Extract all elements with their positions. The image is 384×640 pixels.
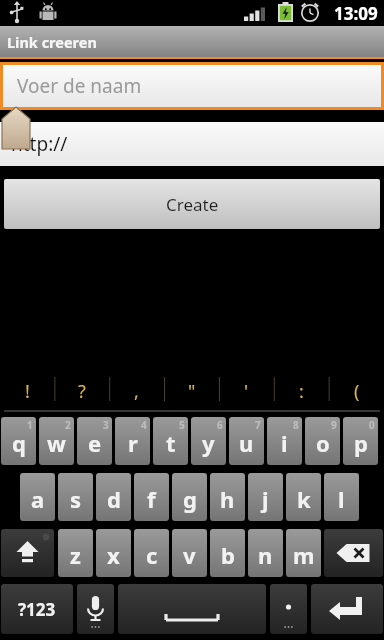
staticText: c <box>146 540 158 570</box>
button[interactable]: ? <box>54 369 109 413</box>
staticText: v <box>183 540 196 570</box>
button[interactable]: Voice input <box>77 584 114 634</box>
button[interactable]: ! <box>0 369 54 413</box>
button[interactable]: ( <box>329 369 384 413</box>
button[interactable]: Voer de naam <box>3 65 381 107</box>
button[interactable]: g <box>172 473 207 521</box>
staticText: 8 <box>293 418 299 432</box>
button[interactable]: y <box>191 417 226 465</box>
button[interactable]: " <box>164 369 219 413</box>
staticText: http:// <box>11 131 68 157</box>
button[interactable]: ?123 <box>1 584 73 634</box>
staticText: j <box>262 484 269 514</box>
staticText: 2 <box>65 418 71 432</box>
staticText: ! <box>25 379 30 404</box>
staticText: 4 <box>141 418 147 432</box>
button[interactable]: r <box>115 417 150 465</box>
staticText: w <box>47 428 66 458</box>
staticText: l <box>338 484 345 514</box>
button[interactable]: k <box>286 473 321 521</box>
button[interactable]: : <box>274 369 329 413</box>
button[interactable]: Shift <box>1 529 54 577</box>
button[interactable]: m <box>286 529 321 577</box>
staticText: , <box>134 379 139 404</box>
staticText: Create <box>166 193 219 216</box>
staticText: q <box>12 428 26 458</box>
staticText: : <box>299 379 304 404</box>
button[interactable]: z <box>58 529 93 577</box>
staticText: 7 <box>255 418 261 432</box>
button[interactable]: Create <box>4 179 380 229</box>
staticText: x <box>107 540 120 570</box>
button[interactable]: v <box>172 529 207 577</box>
staticText: Voer de naam <box>17 73 142 99</box>
button[interactable]: http:// <box>0 122 384 166</box>
staticText: r <box>128 428 138 458</box>
staticText: 5 <box>179 418 185 432</box>
staticText: ?123 <box>18 598 56 621</box>
staticText: " <box>188 379 196 404</box>
staticText: 3 <box>103 418 109 432</box>
staticText: g <box>183 484 197 514</box>
staticText: z <box>70 540 81 570</box>
staticText: 9 <box>331 418 337 432</box>
staticText: ? <box>78 379 86 404</box>
staticText: ' <box>244 379 249 404</box>
staticText: ( <box>354 379 360 404</box>
button[interactable]: f <box>134 473 169 521</box>
staticText: 0 <box>369 418 375 432</box>
staticText: m <box>293 540 315 570</box>
button[interactable]: c <box>134 529 169 577</box>
button[interactable]: u <box>229 417 264 465</box>
staticText: 13:09 <box>334 2 378 25</box>
staticText: f <box>147 484 156 514</box>
staticText: 6 <box>217 418 223 432</box>
button[interactable]: Delete <box>324 529 383 577</box>
button[interactable]: ' <box>219 369 274 413</box>
button[interactable]: Period <box>270 584 307 634</box>
staticText: Link creeren <box>7 32 97 52</box>
staticText: t <box>166 428 176 458</box>
button[interactable]: l <box>324 473 359 521</box>
staticText: n <box>258 540 273 570</box>
staticText: a <box>31 484 45 514</box>
button[interactable]: s <box>58 473 93 521</box>
button[interactable]: a <box>20 473 55 521</box>
staticText: p <box>354 428 368 458</box>
button[interactable]: i <box>267 417 302 465</box>
staticText: e <box>88 428 102 458</box>
button[interactable]: d <box>96 473 131 521</box>
button[interactable]: p <box>343 417 378 465</box>
button[interactable]: Enter <box>311 584 383 634</box>
staticText: d <box>107 484 121 514</box>
staticText: k <box>297 484 311 514</box>
staticText: h <box>220 484 235 514</box>
button[interactable]: o <box>305 417 340 465</box>
button[interactable]: t <box>153 417 188 465</box>
button[interactable]: h <box>210 473 245 521</box>
button[interactable]: e <box>77 417 112 465</box>
button[interactable]: x <box>96 529 131 577</box>
button[interactable]: , <box>109 369 164 413</box>
button[interactable]: q <box>1 417 36 465</box>
button[interactable]: w <box>39 417 74 465</box>
button[interactable]: Space <box>118 584 266 634</box>
staticText: u <box>239 428 254 458</box>
staticText: i <box>281 428 288 458</box>
staticText: b <box>221 540 235 570</box>
staticText: y <box>202 428 215 458</box>
staticText: s <box>70 484 82 514</box>
button[interactable]: b <box>210 529 245 577</box>
staticText: o <box>316 428 330 458</box>
button[interactable]: j <box>248 473 283 521</box>
staticText: 1 <box>27 418 33 432</box>
button[interactable]: n <box>248 529 283 577</box>
